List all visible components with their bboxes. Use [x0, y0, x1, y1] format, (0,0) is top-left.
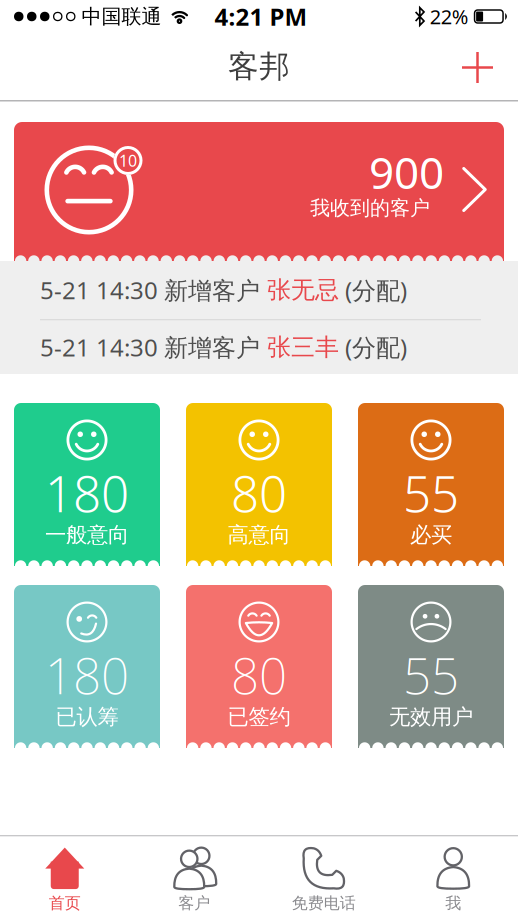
staticText: 张无忌 — [267, 275, 339, 305]
staticText: 高意向 — [227, 522, 290, 548]
staticText: (分配) — [339, 331, 407, 363]
button[interactable]: 5-21 14:30 新增客户 — [0, 261, 518, 319]
staticText: 一般意向 — [45, 522, 129, 548]
staticText: 已签约 — [227, 704, 290, 730]
staticText: 10 — [119, 150, 137, 171]
staticText: 80 — [231, 642, 287, 708]
staticText: 5-21 14:30 新增客户 — [40, 331, 267, 363]
staticText: 我 — [445, 893, 461, 913]
staticText: 免费电话 — [292, 893, 356, 913]
staticText: 已认筹 — [55, 704, 118, 730]
staticText: 中国联通 — [81, 4, 161, 29]
staticText: 张三丰 — [267, 332, 339, 362]
staticText: 80 — [231, 460, 287, 526]
button[interactable]: 180 — [14, 403, 160, 566]
staticText: 180 — [45, 460, 129, 526]
button[interactable]: 免费电话 — [259, 846, 388, 913]
staticText: 4:21 PM — [214, 1, 307, 32]
button[interactable]: 55 — [358, 403, 504, 566]
button[interactable]: 首页 — [0, 846, 129, 913]
staticText: 22% — [430, 3, 469, 30]
staticText: (分配) — [339, 274, 407, 306]
button[interactable]: 5-21 14:30 新增客户 — [0, 320, 518, 374]
staticText: 5-21 14:30 新增客户 — [40, 274, 267, 306]
staticText: 我收到的客户 — [310, 196, 430, 220]
staticText: 55 — [403, 460, 459, 526]
button[interactable]: Add — [450, 50, 518, 83]
button[interactable]: 80 — [186, 585, 332, 748]
staticText: 900 — [369, 143, 444, 201]
staticText: 首页 — [49, 893, 81, 913]
staticText: 无效用户 — [389, 704, 473, 730]
button[interactable]: 55 — [358, 585, 504, 748]
staticText: 必买 — [410, 522, 452, 548]
button[interactable]: 10 — [14, 122, 504, 261]
staticText: 180 — [45, 642, 129, 708]
staticText: 客户 — [178, 893, 210, 913]
staticText: 客邦 — [228, 48, 290, 85]
button[interactable]: 客户 — [129, 846, 259, 913]
button[interactable]: 我 — [388, 846, 518, 913]
button[interactable]: 180 — [14, 585, 160, 748]
button[interactable]: 80 — [186, 403, 332, 566]
staticText: 55 — [403, 642, 459, 708]
